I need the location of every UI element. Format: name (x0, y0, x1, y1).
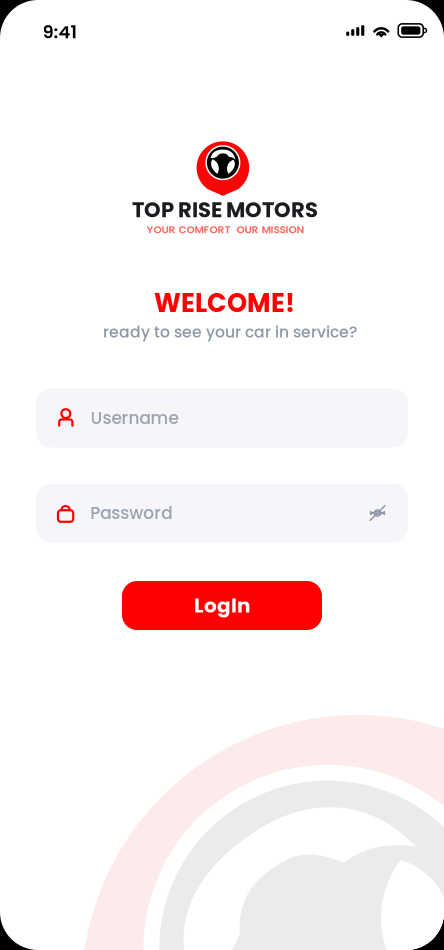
staticText: ready to see your car in service? (103, 321, 357, 343)
button[interactable]: Username (36, 388, 408, 447)
staticText: LogIn (194, 591, 250, 619)
button[interactable]: LogIn (122, 581, 322, 630)
staticText: WELCOME! (154, 285, 295, 321)
staticText: YOUR COMFORT OUR MISSION (146, 222, 304, 237)
staticText: 9:41 (42, 19, 76, 44)
button[interactable]: Password (36, 483, 408, 542)
staticText: Username (91, 406, 179, 430)
staticText: TOP RISE MOTORS (132, 195, 318, 225)
staticText: Password (90, 501, 172, 525)
